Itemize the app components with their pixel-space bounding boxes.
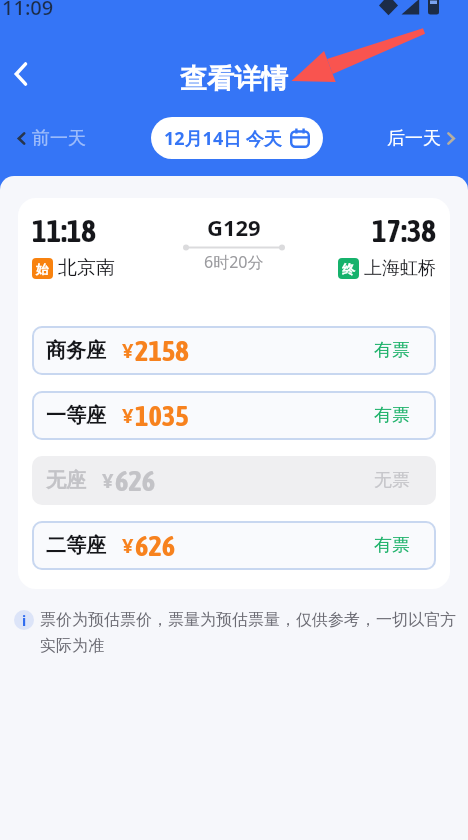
staticText: 二等座 bbox=[46, 533, 106, 558]
button[interactable]: 二等座 bbox=[32, 521, 436, 570]
staticText: 商务座 bbox=[46, 338, 106, 363]
staticText: ¥ bbox=[122, 402, 134, 429]
staticText: 有票 bbox=[374, 339, 410, 362]
staticText: 1035 bbox=[135, 399, 189, 432]
staticText: 17:38 bbox=[372, 213, 436, 249]
button[interactable]: 前一天 bbox=[14, 127, 86, 150]
staticText: 始 bbox=[36, 261, 49, 277]
staticText: ¥ bbox=[102, 467, 114, 494]
staticText: 后一天 bbox=[387, 127, 441, 150]
staticText: 有票 bbox=[374, 534, 410, 557]
staticText: 无座 bbox=[46, 468, 86, 493]
staticText: 一等座 bbox=[46, 403, 106, 428]
staticText: ¥ bbox=[122, 337, 134, 364]
staticText: 11:09 bbox=[2, 0, 54, 21]
staticText: 6时20分 bbox=[204, 251, 264, 273]
staticText: 626 bbox=[115, 464, 156, 497]
staticText: 票价为预估票价，票量为预估票量，仅供参考，一切以官方实际为准 bbox=[40, 610, 463, 655]
staticText: ¥ bbox=[122, 532, 134, 559]
button[interactable]: 后一天 bbox=[387, 127, 458, 150]
button[interactable]: 无座 bbox=[32, 456, 436, 505]
staticText: G129 bbox=[207, 212, 261, 242]
staticText: 前一天 bbox=[32, 127, 86, 150]
staticText: 12月14日 今天 bbox=[164, 126, 282, 151]
button[interactable]: 一等座 bbox=[32, 391, 436, 440]
staticText: 有票 bbox=[374, 404, 410, 427]
staticText: i bbox=[22, 611, 27, 630]
button[interactable]: 商务座 bbox=[32, 326, 436, 375]
staticText: 2158 bbox=[135, 334, 189, 367]
button[interactable] bbox=[4, 56, 40, 92]
staticText: 上海虹桥 bbox=[364, 257, 436, 280]
staticText: 北京南 bbox=[58, 256, 115, 280]
staticText: 终 bbox=[342, 261, 355, 277]
staticText: 无票 bbox=[374, 469, 410, 492]
button[interactable]: 12月14日 今天 bbox=[151, 117, 323, 159]
staticText: 626 bbox=[135, 529, 176, 562]
staticText: 查看详情 bbox=[0, 62, 468, 96]
staticText: 11:18 bbox=[32, 213, 96, 249]
